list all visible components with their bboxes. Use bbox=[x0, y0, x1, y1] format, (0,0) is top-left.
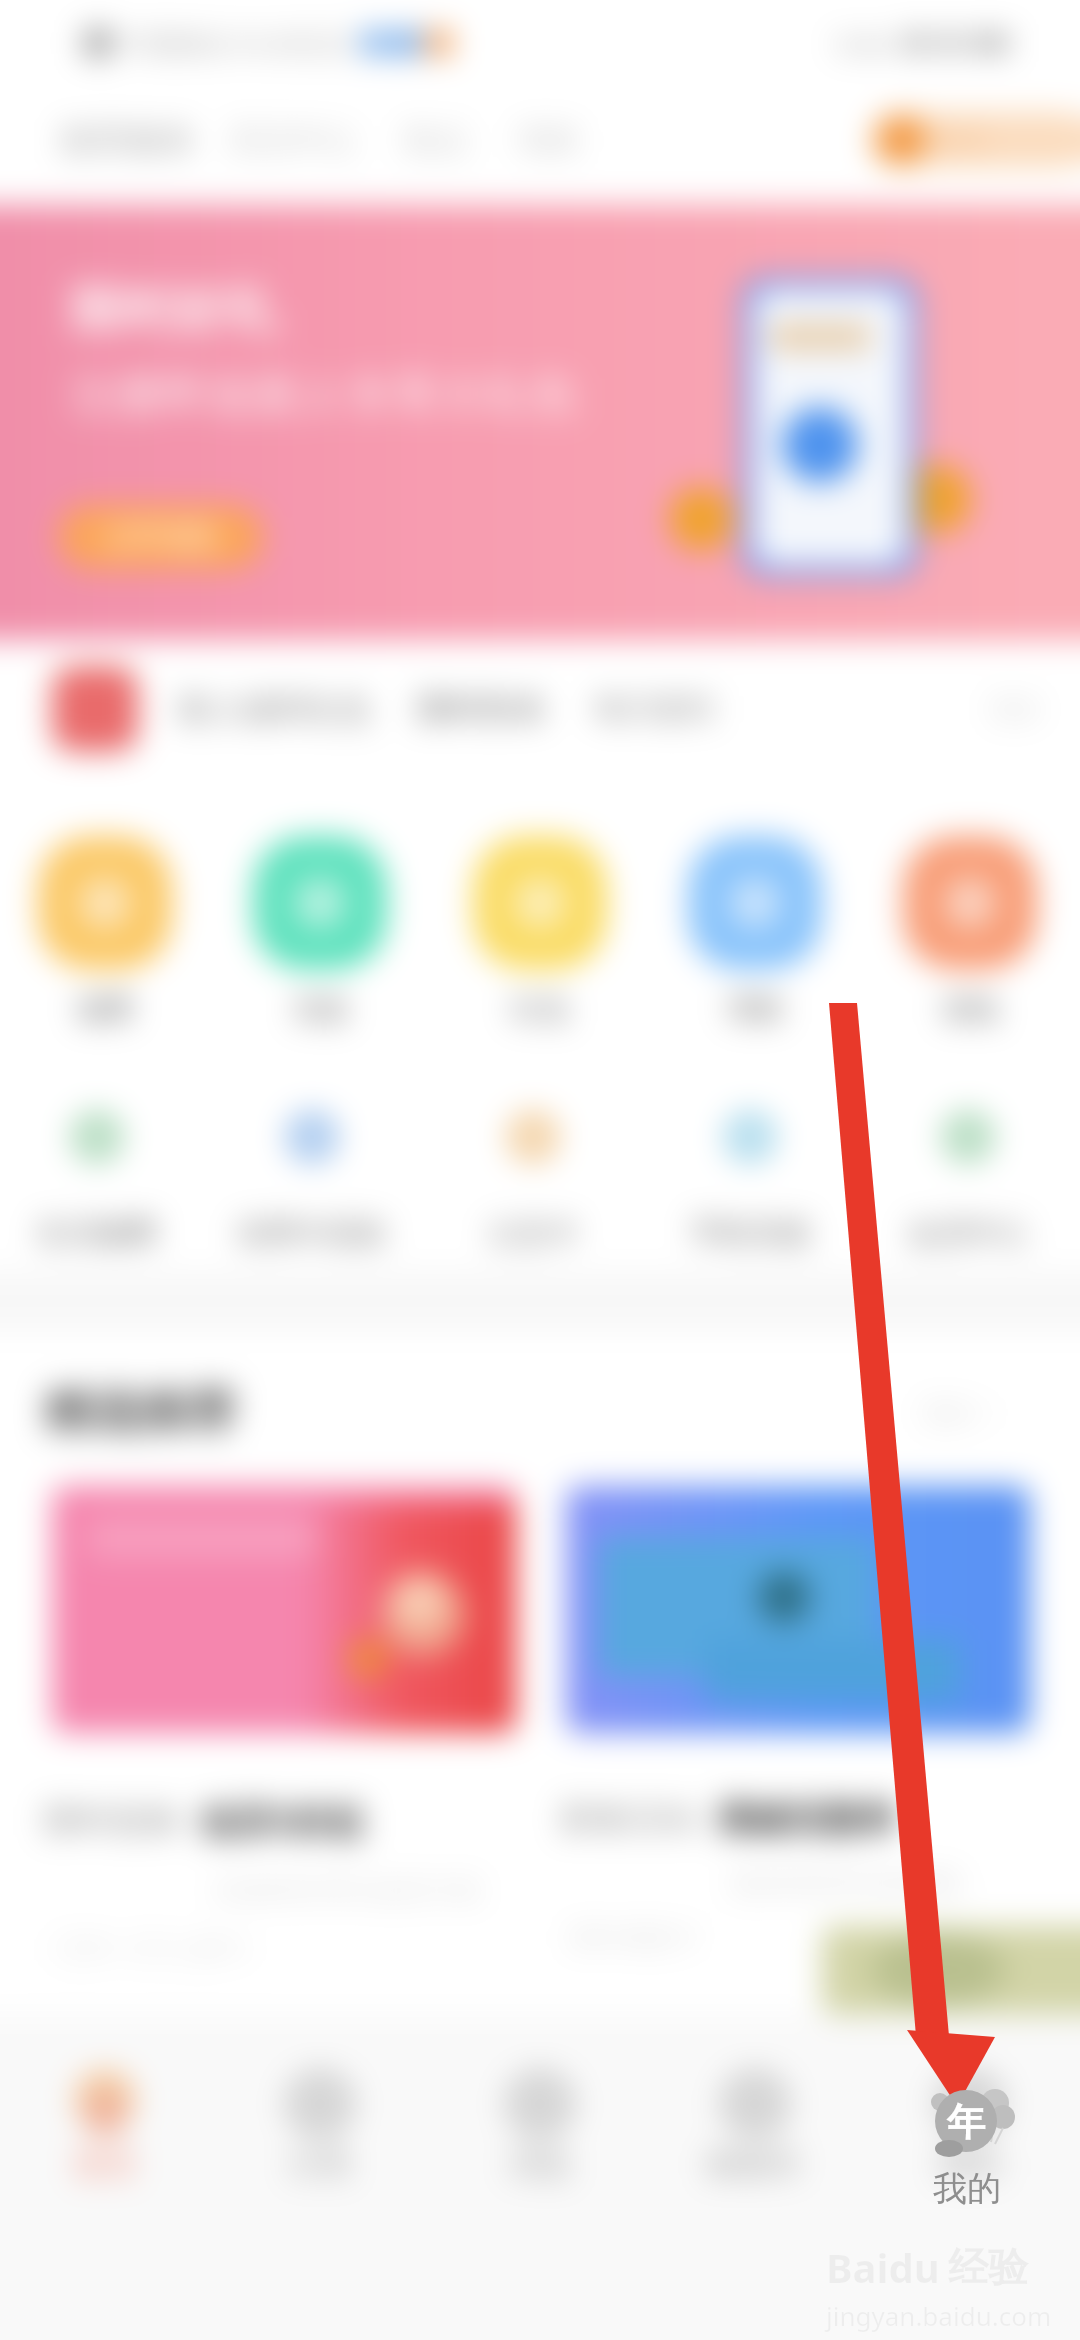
staticText: 中国移动 5G 好生活 bbox=[122, 25, 352, 61]
button[interactable]: 我的 bbox=[907, 2080, 1027, 2210]
button[interactable]: 消息 bbox=[450, 2070, 630, 2184]
button[interactable]: 缴费 bbox=[25, 836, 185, 1027]
staticText: jingyan.baidu.com bbox=[826, 2298, 1052, 2333]
staticText: 公交卡 bbox=[428, 1214, 638, 1252]
button[interactable]: 借钱 bbox=[890, 836, 1050, 1027]
button[interactable]: 推荐服务 bbox=[60, 119, 196, 162]
staticText: 低至5折起 bbox=[200, 1796, 365, 1845]
button[interactable]: 新春活动 卡片 bbox=[566, 1486, 1030, 1733]
staticText: 新人福利礼包 bbox=[178, 689, 370, 729]
button[interactable]: 红包 bbox=[460, 836, 620, 1027]
button[interactable]: 公交卡 bbox=[428, 1112, 638, 1252]
button[interactable]: 立即领取 bbox=[58, 505, 263, 569]
button[interactable]: 活动入口 bbox=[52, 666, 138, 752]
staticText: 限时好礼 bbox=[70, 278, 278, 344]
button[interactable]: 生活缴费 bbox=[0, 1112, 202, 1252]
staticText: 经验 bbox=[948, 2242, 1028, 2292]
button[interactable]: 首页 bbox=[15, 2070, 195, 2184]
staticText: 分类 bbox=[230, 2144, 410, 2184]
staticText: 年 bbox=[947, 2098, 985, 2146]
button[interactable]: 理财 bbox=[675, 836, 835, 1027]
staticText: 满减优惠券 bbox=[716, 1796, 896, 1841]
button[interactable]: 购物车 bbox=[665, 2070, 845, 2184]
staticText: 限时秒杀 bbox=[418, 689, 546, 729]
staticText: 手机充值 bbox=[645, 1214, 855, 1252]
button[interactable]: 信用卡还款 bbox=[207, 1112, 417, 1252]
button[interactable]: 限时抢购 活动卡片 bbox=[52, 1486, 516, 1733]
staticText: 信用卡还款 bbox=[207, 1214, 417, 1252]
staticText: 购物车 bbox=[665, 2144, 845, 2184]
staticText: 立即领取 bbox=[101, 518, 221, 556]
staticText: 注册即送新人专享大礼包 bbox=[70, 366, 576, 424]
staticText: 借钱 bbox=[890, 992, 1050, 1027]
staticText: 我的 bbox=[880, 2144, 1060, 2184]
staticText: 推荐服务 bbox=[60, 119, 196, 162]
button[interactable]: 会员中心 bbox=[863, 1112, 1073, 1252]
staticText: 会员中心 bbox=[863, 1214, 1073, 1252]
staticText: 红包 bbox=[460, 992, 620, 1027]
staticText: 限时抢购 bbox=[44, 1799, 180, 1842]
button[interactable]: 分类 bbox=[230, 2070, 410, 2184]
staticText: Baidu bbox=[826, 2240, 940, 2294]
button[interactable]: 领取 bbox=[824, 112, 1044, 168]
staticText: 更多惊喜等你来领取 bbox=[730, 1867, 964, 1900]
staticText: 消息 bbox=[450, 2144, 630, 2184]
staticText: 充值 bbox=[240, 992, 400, 1027]
staticText: 缴费 bbox=[25, 992, 185, 1027]
staticText: 我的 bbox=[907, 2167, 1027, 2210]
button[interactable]: 新人福利礼包 bbox=[178, 666, 1042, 752]
staticText: 理财 bbox=[675, 992, 835, 1027]
button[interactable]: 我的 bbox=[880, 2070, 1060, 2184]
staticText: 新春活动 bbox=[560, 1797, 696, 1840]
staticText: 领取 bbox=[932, 123, 988, 158]
staticText: 首页 bbox=[15, 2144, 195, 2184]
button[interactable]: 充值 bbox=[240, 836, 400, 1027]
staticText: 生活缴费 bbox=[0, 1214, 202, 1252]
staticText: 精选推荐 bbox=[44, 1382, 236, 1442]
staticText: 每日签到 bbox=[594, 690, 714, 728]
button[interactable]: 手机充值 bbox=[645, 1112, 855, 1252]
